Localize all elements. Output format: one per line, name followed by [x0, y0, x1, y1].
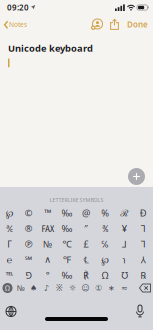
staticText: Ɖ	[140, 207, 147, 219]
button[interactable]: ¥	[115, 221, 134, 236]
button[interactable]: Next keyboard	[5, 306, 16, 317]
button[interactable]: Done	[127, 19, 148, 30]
staticText: ℉	[63, 253, 71, 266]
button[interactable]: ℘	[0, 205, 19, 221]
button[interactable]: ℁	[96, 221, 115, 236]
button[interactable]: Γ	[0, 236, 19, 252]
staticText: £	[84, 238, 89, 250]
staticText: ⅃	[122, 238, 127, 250]
button[interactable]: ‰	[57, 221, 76, 236]
staticText: ≈	[121, 283, 128, 293]
staticText: ☼	[69, 283, 76, 293]
staticText: ‰	[61, 269, 72, 281]
staticText: ‰	[61, 207, 72, 219]
staticText: ℞	[140, 269, 146, 281]
button[interactable]: ‰	[57, 205, 76, 221]
staticText: ℛ	[120, 207, 128, 219]
button[interactable]: Add	[128, 168, 145, 185]
button[interactable]: %	[96, 205, 115, 221]
staticText: ♠	[30, 283, 37, 293]
button[interactable]: ℠	[19, 252, 38, 267]
staticText: Γ	[7, 238, 12, 250]
button[interactable]: ‰	[57, 267, 76, 283]
button[interactable]: ℃	[57, 236, 76, 252]
button[interactable]: ™	[38, 205, 57, 221]
staticText: ∗	[108, 283, 115, 293]
staticText: ℃	[62, 238, 71, 250]
staticText: ℀	[6, 222, 13, 235]
staticText: ℟	[83, 269, 89, 281]
staticText: Ω	[102, 269, 109, 281]
button[interactable]: ℧	[115, 267, 134, 283]
button[interactable]: ℗	[19, 236, 38, 252]
button[interactable]: ⅂	[134, 236, 153, 252]
button[interactable]: ®	[19, 221, 38, 236]
button[interactable]: Symbol group	[53, 282, 66, 293]
button[interactable]: Symbol group	[79, 282, 92, 293]
button[interactable]: Symbol group	[92, 282, 105, 293]
staticText: ①	[95, 283, 102, 293]
staticText: ℠	[25, 253, 33, 266]
button[interactable]: £	[76, 236, 96, 252]
staticText: ☺	[81, 283, 89, 293]
staticText: ℻	[41, 222, 54, 235]
button[interactable]: ⅃	[115, 236, 134, 252]
button[interactable]: Ω	[96, 267, 115, 283]
staticText: @	[82, 207, 90, 219]
staticText: ¥	[122, 222, 127, 235]
staticText: °	[46, 269, 50, 281]
staticText: ⅂	[141, 238, 146, 250]
button[interactable]: Symbol group	[118, 282, 131, 293]
button[interactable]: Symbol group	[14, 282, 27, 293]
button[interactable]: Dictation	[136, 304, 144, 317]
button[interactable]: Symbol group	[40, 282, 53, 293]
button[interactable]: Symbol group	[27, 282, 40, 293]
staticText: ∧	[44, 254, 51, 265]
button[interactable]: Share note with people	[91, 18, 103, 30]
staticText: ℅	[101, 238, 109, 250]
button[interactable]: ℄	[76, 252, 96, 267]
staticText: ♪	[44, 283, 49, 293]
button[interactable]: №	[38, 236, 57, 252]
staticText: Done	[127, 19, 148, 30]
staticText: ℡	[6, 269, 14, 281]
staticText: %	[101, 207, 109, 219]
staticText: ©	[25, 207, 33, 219]
button[interactable]: Back to Notes	[4, 20, 27, 29]
button[interactable]: ℻	[38, 221, 57, 236]
button[interactable]: °	[38, 267, 57, 283]
staticText: 09:20	[7, 2, 29, 13]
button[interactable]: @	[76, 205, 96, 221]
staticText: ⅄	[141, 253, 146, 266]
button[interactable]: Ɖ	[134, 205, 153, 221]
button[interactable]: Letterlike symbols	[1, 282, 14, 293]
staticText: ⅁	[25, 269, 32, 281]
staticText: ″	[84, 222, 88, 235]
button[interactable]: ℉	[57, 252, 76, 267]
staticText: Notes	[9, 20, 27, 29]
button[interactable]: ℛ	[115, 205, 134, 221]
staticText: ℮	[7, 253, 13, 266]
button[interactable]: ∧	[38, 252, 57, 267]
button[interactable]: ⅂	[134, 221, 153, 236]
button[interactable]: Delete	[139, 283, 151, 292]
button[interactable]: ℘	[96, 252, 115, 267]
button[interactable]: ℟	[76, 267, 96, 283]
staticText: ℄	[84, 253, 89, 266]
button[interactable]: ©	[19, 205, 38, 221]
button[interactable]: ⅄	[134, 252, 153, 267]
staticText: Ω	[5, 284, 10, 292]
button[interactable]: Share	[110, 19, 119, 30]
button[interactable]: ″	[76, 221, 96, 236]
button[interactable]: ℞	[134, 267, 153, 283]
button[interactable]: ℅	[96, 236, 115, 252]
button[interactable]: ℀	[0, 221, 19, 236]
staticText: ※	[56, 283, 63, 293]
button[interactable]: ℡	[0, 267, 19, 283]
button[interactable]: Symbol group	[66, 282, 79, 293]
staticText: ℩	[123, 253, 126, 266]
button[interactable]: ⅁	[19, 267, 38, 283]
button[interactable]: ℩	[115, 252, 134, 267]
button[interactable]: Symbol group	[105, 282, 118, 293]
button[interactable]: ℮	[0, 252, 19, 267]
